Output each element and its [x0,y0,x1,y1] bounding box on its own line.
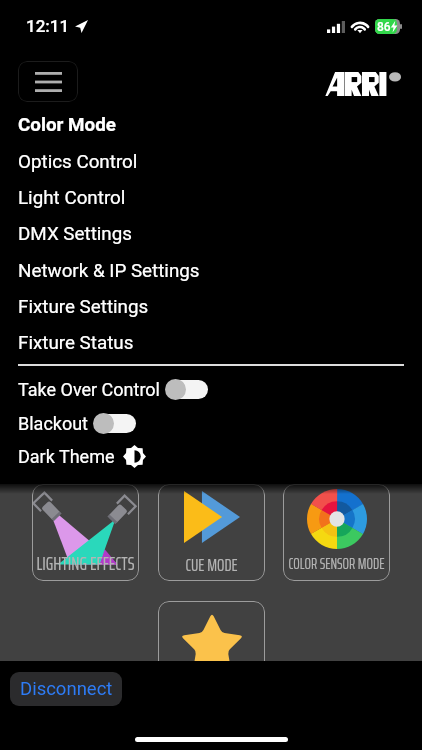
staticText: Optics Control [18,151,138,173]
button[interactable]: Color Mode [0,107,422,143]
staticText: 12:11 [26,16,70,36]
other: Dark Theme [123,445,146,468]
button[interactable]: Blackout [0,407,422,440]
button[interactable]: Network & IP Settings [0,253,422,289]
button[interactable]: Take Over Control [0,373,422,406]
button[interactable]: FAVORITES [158,601,265,698]
staticText: 86 [377,20,391,34]
button[interactable]: Dark Theme [0,440,422,473]
staticText: Blackout [18,413,89,434]
button[interactable]: LIGHTING EFFECTS [32,484,139,581]
staticText: Light Control [18,187,126,209]
staticText: LIGHTING EFFECTS [32,549,139,579]
staticText: Fixture Settings [18,296,149,318]
button[interactable]: Disconnect [10,672,122,706]
button[interactable]: Optics Control [0,144,422,180]
staticText: CUE MODE [158,551,265,578]
button[interactable]: Fixture Settings [0,289,422,325]
button[interactable]: DMX Settings [0,216,422,252]
staticText: Color Mode [18,114,116,136]
button[interactable]: Light Control [0,180,422,216]
button[interactable]: Fixture Status [0,325,422,361]
button[interactable]: Menu [18,61,78,102]
staticText: COLOR SENSOR MODE [283,552,390,576]
staticText: Disconnect [20,678,113,700]
staticText: DMX Settings [18,223,132,245]
staticText: Dark Theme [18,446,115,467]
staticText: Take Over Control [18,379,160,400]
other: ARRI [325,72,403,96]
staticText: Network & IP Settings [18,260,200,282]
button[interactable]: CUE MODE [158,484,265,581]
button[interactable]: COLOR SENSOR MODE [283,484,390,581]
staticText: Fixture Status [18,332,134,354]
